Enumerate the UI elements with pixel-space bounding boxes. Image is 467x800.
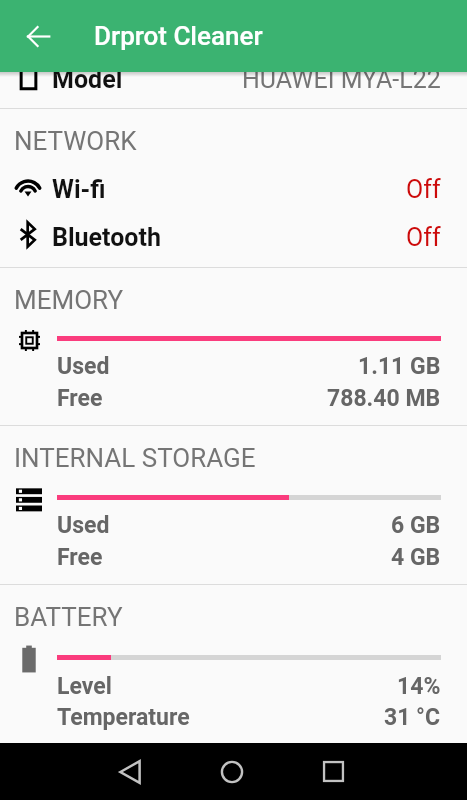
staticText: Model: [52, 65, 123, 94]
staticText: Used: [57, 512, 110, 539]
button[interactable]: Bluetooth: [0, 211, 467, 257]
staticText: Temperature: [57, 704, 190, 731]
staticText: HUAWEI MYA-L22: [242, 65, 441, 94]
staticText: 31 °C: [384, 704, 441, 731]
button[interactable]: Home: [205, 745, 258, 798]
staticText: Off: [406, 223, 441, 252]
button[interactable]: Model: [0, 51, 467, 107]
staticText: BATTERY: [14, 602, 123, 632]
button[interactable]: Back: [14, 12, 62, 60]
staticText: NETWORK: [14, 126, 137, 156]
button[interactable]: Recents: [307, 745, 360, 798]
staticText: INTERNAL STORAGE: [14, 443, 256, 473]
button[interactable]: Wi-fi: [0, 163, 467, 209]
staticText: Bluetooth: [52, 223, 161, 252]
staticText: Level: [57, 673, 112, 700]
staticText: Wi-fi: [52, 175, 106, 204]
staticText: Free: [57, 544, 103, 571]
button[interactable]: Back: [103, 745, 156, 798]
staticText: Used: [57, 353, 110, 380]
staticText: 14%: [397, 673, 441, 700]
staticText: 6 GB: [391, 512, 441, 539]
staticText: 788.40 MB: [327, 385, 441, 412]
staticText: Drprot Cleaner: [94, 21, 263, 51]
staticText: Free: [57, 385, 103, 412]
staticText: MEMORY: [14, 285, 124, 315]
staticText: Off: [406, 175, 441, 204]
staticText: 1.11 GB: [358, 353, 441, 380]
staticText: 4 GB: [391, 544, 441, 571]
